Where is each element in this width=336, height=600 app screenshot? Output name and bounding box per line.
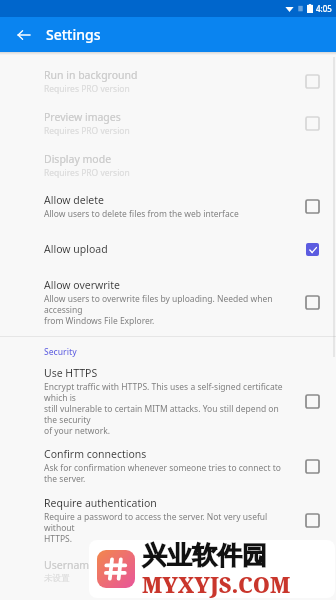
staticText: Allow delete bbox=[44, 193, 104, 207]
staticText: Run in background bbox=[44, 68, 138, 82]
button[interactable]: Confirm connections bbox=[0, 441, 336, 490]
staticText: Display mode bbox=[44, 152, 112, 166]
staticText: Allow users to overwrite files by upload… bbox=[44, 293, 290, 326]
button[interactable]: Toggle setting bbox=[298, 192, 326, 220]
button[interactable]: Toggle setting bbox=[298, 452, 326, 480]
staticText: 4:05 bbox=[316, 3, 332, 14]
staticText: Allow users to delete files from the web… bbox=[44, 208, 239, 220]
staticText: Confirm connections bbox=[44, 447, 147, 461]
staticText: Settings bbox=[46, 25, 101, 44]
staticText: 未设置 bbox=[44, 573, 70, 584]
button[interactable]: Toggle setting bbox=[298, 387, 326, 415]
button[interactable]: Toggle setting bbox=[298, 506, 326, 534]
button[interactable]: Allow overwrite bbox=[0, 272, 336, 332]
button[interactable]: Toggle setting bbox=[298, 109, 326, 137]
staticText: Require a password to access the server.… bbox=[44, 511, 290, 544]
button[interactable]: Preview images bbox=[0, 102, 336, 144]
button[interactable]: Back bbox=[10, 21, 38, 49]
button[interactable]: Toggle setting bbox=[298, 288, 326, 316]
staticText: Security bbox=[44, 346, 77, 358]
button[interactable]: Toggle setting bbox=[298, 235, 326, 263]
button[interactable]: Password bbox=[0, 590, 336, 600]
button[interactable]: Toggle setting bbox=[298, 67, 326, 95]
staticText: Preview images bbox=[44, 110, 121, 124]
staticText: 兴业软件园 bbox=[142, 540, 267, 571]
staticText: Requires PRO version bbox=[44, 83, 130, 95]
staticText: Encrypt traffic with HTTPS. This uses a … bbox=[44, 381, 290, 436]
button[interactable]: Require authentication bbox=[0, 490, 336, 550]
button[interactable]: Allow upload bbox=[0, 226, 336, 272]
staticText: MYXYJS.COM bbox=[142, 571, 291, 598]
staticText: Username bbox=[44, 558, 96, 572]
button[interactable]: Run in background bbox=[0, 60, 336, 102]
button[interactable]: Display mode bbox=[0, 144, 336, 186]
button[interactable]: Use HTTPS bbox=[0, 361, 336, 441]
staticText: Use HTTPS bbox=[44, 366, 98, 380]
staticText: Allow overwrite bbox=[44, 278, 120, 292]
staticText: Requires PRO version bbox=[44, 167, 130, 179]
button[interactable]: Username bbox=[0, 550, 336, 590]
staticText: Ask for confirmation whenever someone tr… bbox=[44, 462, 290, 484]
staticText: Require authentication bbox=[44, 496, 157, 510]
staticText: Requires PRO version bbox=[44, 125, 130, 137]
button[interactable]: Allow delete bbox=[0, 186, 336, 226]
staticText: Allow upload bbox=[44, 242, 108, 256]
